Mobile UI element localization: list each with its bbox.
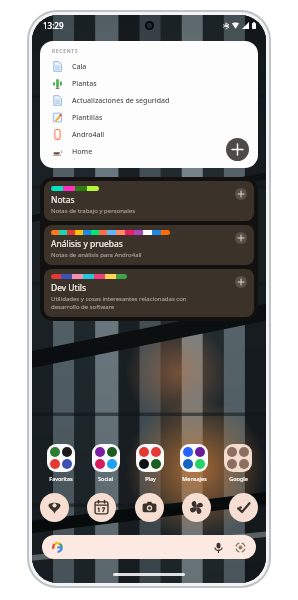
button[interactable]: New note [226, 138, 249, 161]
button[interactable]: Andro4all [40, 126, 258, 143]
button[interactable]: Play [128, 444, 172, 482]
button[interactable]: Add to Análisis y pruebas [235, 232, 247, 244]
button[interactable]: Voice search [42, 535, 256, 559]
staticText: Play [145, 475, 156, 482]
staticText: RECENTS [52, 48, 79, 55]
staticText: Social [98, 475, 113, 482]
button[interactable]: Add to Notas [235, 188, 247, 200]
button[interactable]: Photos [182, 493, 211, 522]
staticText: Home [72, 147, 93, 157]
button[interactable]: Camera [135, 493, 164, 522]
staticText: Análisis y pruebas [51, 238, 123, 250]
button[interactable]: Social [83, 444, 128, 482]
button[interactable]: Dev Utils [44, 269, 254, 317]
button[interactable]: Home [40, 143, 258, 160]
button[interactable]: Favoritas [38, 444, 83, 482]
staticText: Favoritas [49, 475, 73, 482]
button[interactable]: Análisis y pruebas [44, 225, 254, 265]
staticText: Cala [72, 62, 87, 72]
staticText: Google [229, 475, 248, 482]
button[interactable]: Add to Dev Utils [235, 276, 247, 288]
button[interactable]: Tasks [229, 493, 258, 522]
button[interactable]: Notas [44, 181, 254, 221]
button[interactable]: Cala [40, 58, 258, 75]
staticText: Mensajes [182, 475, 207, 482]
staticText: Plantas [72, 79, 97, 89]
staticText: Plantillas [72, 113, 103, 123]
button[interactable]: Plantas [40, 75, 258, 92]
staticText: Notas de trabajo y personales [51, 207, 136, 215]
button[interactable]: Maps [40, 493, 69, 522]
button[interactable]: Actualizaciones de seguridad [40, 92, 258, 109]
staticText: Dev Utils [51, 282, 87, 294]
other: Google Lens [235, 542, 246, 553]
staticText: 13:29 [43, 20, 64, 31]
button[interactable]: Plantillas [40, 109, 258, 126]
button[interactable]: Google [216, 444, 260, 482]
staticText: Notas de análisis para Andro4all [51, 251, 142, 259]
staticText: Andro4all [72, 130, 105, 140]
other: Voice search [213, 542, 224, 553]
button[interactable]: Calendar [87, 493, 116, 522]
staticText: Notas [51, 194, 75, 206]
staticText: Utilidades y cosas interesantes relacion… [51, 295, 216, 311]
staticText: Actualizaciones de seguridad [72, 96, 170, 106]
button[interactable]: Mensajes [172, 444, 216, 482]
